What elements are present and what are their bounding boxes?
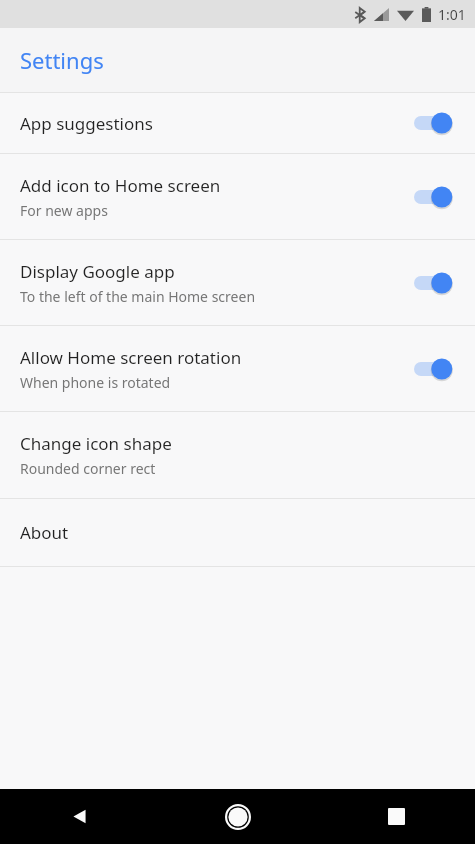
button[interactable]: Home: [159, 789, 317, 844]
button[interactable]: Display Google app: [0, 240, 475, 325]
button[interactable]: Allow Home screen rotation: [0, 326, 475, 411]
button[interactable]: Toggle: [409, 108, 455, 138]
button[interactable]: Change icon shape: [0, 412, 475, 498]
staticText: For new apps: [20, 201, 108, 220]
button[interactable]: Toggle: [409, 182, 455, 212]
button[interactable]: Add icon to Home screen: [0, 154, 475, 239]
button[interactable]: About: [0, 499, 475, 566]
staticText: To the left of the main Home screen: [20, 287, 256, 306]
staticText: Settings: [20, 45, 104, 75]
button[interactable]: Toggle: [409, 354, 455, 384]
staticText: Add icon to Home screen: [20, 174, 221, 197]
staticText: About: [20, 521, 69, 544]
staticText: App suggestions: [20, 112, 153, 135]
staticText: Change icon shape: [20, 432, 172, 455]
staticText: Rounded corner rect: [20, 459, 156, 478]
staticText: 1:01: [438, 5, 466, 24]
button[interactable]: Back: [0, 789, 159, 844]
button[interactable]: Recent apps: [317, 789, 475, 844]
button[interactable]: App suggestions: [0, 93, 475, 153]
staticText: When phone is rotated: [20, 373, 171, 392]
button[interactable]: Toggle: [409, 268, 455, 298]
staticText: Allow Home screen rotation: [20, 346, 242, 369]
staticText: Display Google app: [20, 260, 175, 283]
